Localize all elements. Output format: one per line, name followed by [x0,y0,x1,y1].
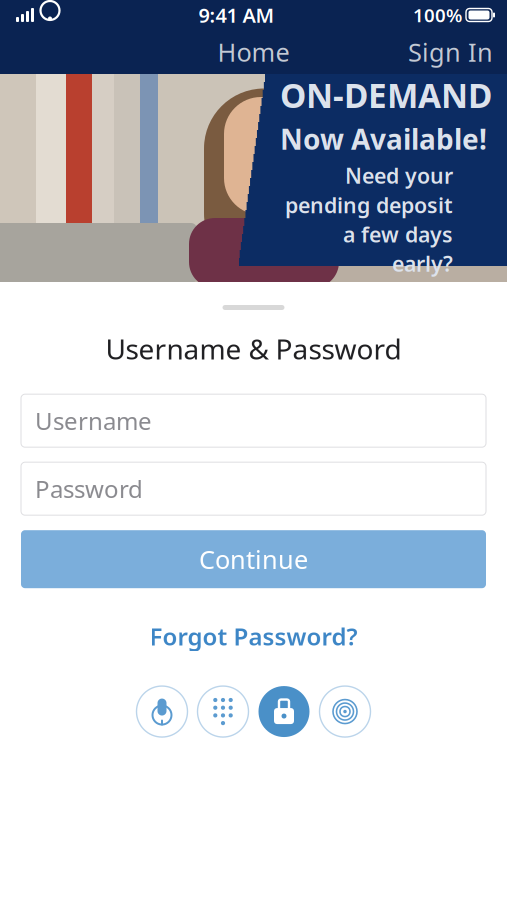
staticText: Forgot Password? [149,620,357,652]
staticText: Password [35,473,143,505]
staticText: Username [35,405,152,437]
staticText: a few days [343,220,453,248]
button[interactable]: Password [21,462,486,515]
staticText: Home [217,35,289,69]
staticText: Username & Password [105,330,401,367]
staticText: early? [392,249,453,278]
button[interactable]: Sign In [394,29,507,75]
button[interactable]: Voice sign in [136,686,187,737]
button[interactable]: Password sign in [258,686,309,737]
button[interactable]: PIN sign in [197,686,248,737]
staticText: Sign In [408,35,493,69]
staticText: ON-DEMAND [280,73,492,117]
button[interactable]: Forgot Password? [137,614,369,658]
staticText: pending deposit [285,191,453,219]
staticText: Now Available! [280,120,487,157]
button[interactable]: Home [203,29,303,75]
staticText: Continue [199,542,308,576]
staticText: Need your [345,161,453,190]
staticText: ACH Posting [280,27,480,71]
button[interactable]: Fingerprint sign in [319,686,370,737]
staticText: 9:41 AM [198,2,274,28]
staticText: 100% [413,3,462,27]
button[interactable]: Continue [21,530,486,588]
button[interactable]: Username [21,394,486,447]
